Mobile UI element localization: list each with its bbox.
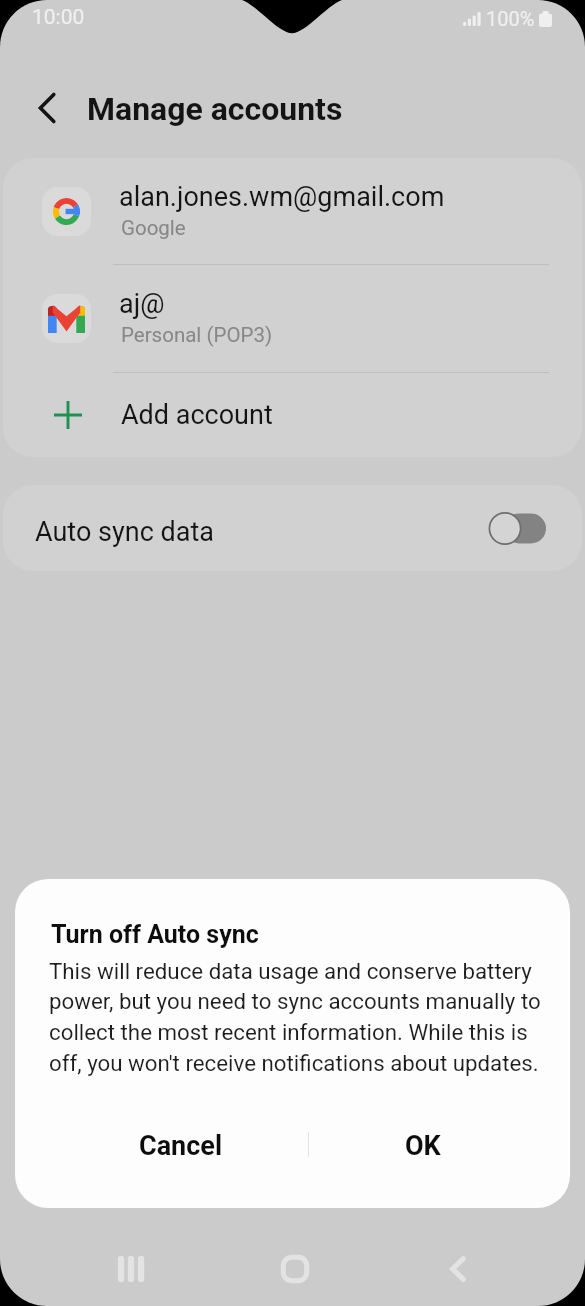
button[interactable]: Navigate up	[23, 84, 71, 132]
staticText: Google	[121, 216, 186, 240]
button[interactable]: Recent apps	[100, 1233, 161, 1305]
staticText: 100%	[486, 7, 535, 30]
staticText: Auto sync data	[35, 516, 214, 548]
staticText: Turn off Auto sync	[51, 920, 259, 949]
button[interactable]: OK	[352, 1112, 493, 1180]
button[interactable]: aj@	[3, 265, 582, 372]
button[interactable]: Home	[265, 1233, 325, 1305]
button[interactable]: Cancel	[110, 1112, 251, 1180]
button[interactable]: Auto sync data	[3, 485, 582, 571]
staticText: Cancel	[139, 1130, 223, 1162]
staticText: This will reduce data usage and conserve…	[49, 958, 545, 1077]
staticText: OK	[405, 1130, 441, 1162]
button[interactable]: alan.jones.wm@gmail.com	[3, 158, 582, 265]
staticText: 10:00	[32, 5, 85, 30]
staticText: Add account	[121, 399, 273, 431]
staticText: Personal (POP3)	[121, 323, 273, 347]
staticText: Manage accounts	[87, 90, 343, 128]
button[interactable]: Add account	[3, 372, 582, 457]
staticText: aj@	[119, 288, 165, 320]
button[interactable]: Back	[428, 1233, 488, 1305]
staticText: alan.jones.wm@gmail.com	[119, 181, 445, 213]
